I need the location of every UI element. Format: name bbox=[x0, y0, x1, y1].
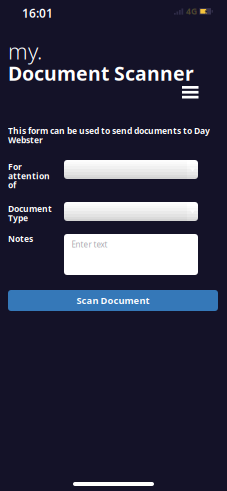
button[interactable]: Select an option bbox=[64, 202, 198, 221]
staticText: of bbox=[8, 179, 16, 191]
button[interactable]: Notes bbox=[64, 234, 198, 275]
staticText: Enter text bbox=[71, 239, 107, 250]
staticText: Document bbox=[8, 203, 52, 215]
staticText: Type bbox=[8, 212, 28, 224]
staticText: Webster bbox=[8, 134, 43, 146]
staticText: Notes bbox=[8, 233, 33, 245]
staticText: For bbox=[8, 161, 22, 173]
staticText: 4G bbox=[186, 5, 197, 17]
staticText: Document Scanner bbox=[8, 60, 194, 86]
button[interactable]: Scan Document bbox=[8, 290, 218, 311]
staticText: Scan Document bbox=[76, 294, 149, 307]
staticText: 16:01 bbox=[22, 5, 53, 21]
staticText: my. bbox=[8, 36, 42, 66]
staticText: This form can be used to send documents … bbox=[8, 125, 210, 137]
button[interactable]: Select an option bbox=[64, 160, 198, 179]
staticText: attention bbox=[8, 170, 50, 182]
button[interactable]: Menu bbox=[175, 79, 205, 105]
